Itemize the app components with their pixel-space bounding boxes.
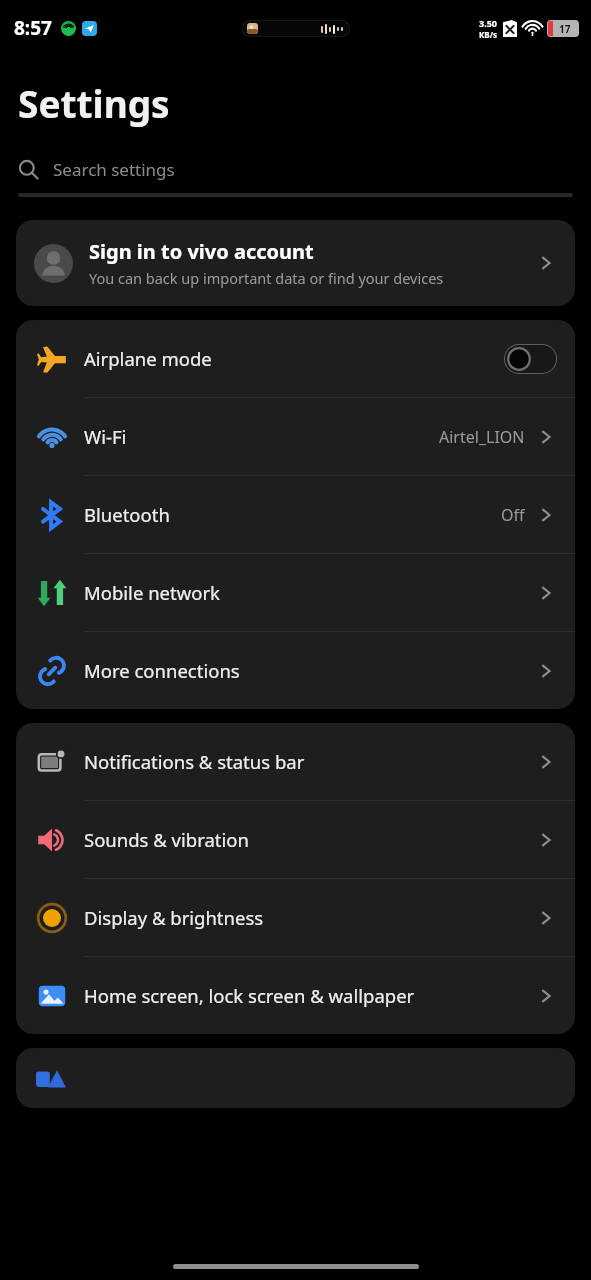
button[interactable]: Wi-Fi — [16, 398, 575, 476]
staticText: Display & brightness — [84, 905, 535, 930]
staticText: Home screen, lock screen & wallpaper — [84, 983, 535, 1008]
button[interactable]: More connections — [16, 632, 575, 709]
staticText: Mobile network — [84, 580, 535, 605]
staticText: 3.50 — [479, 17, 497, 29]
button[interactable]: Display & brightness — [16, 879, 575, 957]
staticText: Airtel_LION — [439, 426, 525, 448]
button[interactable] — [16, 1048, 575, 1108]
staticText: More connections — [84, 658, 535, 683]
staticText: Settings — [18, 78, 170, 128]
staticText: 8:57 — [14, 15, 52, 41]
staticText: Sounds & vibration — [84, 827, 535, 852]
button[interactable]: Notifications & status bar — [16, 723, 575, 801]
staticText: 17 — [559, 22, 571, 36]
button[interactable]: Airplane mode — [16, 320, 575, 398]
staticText: Search settings — [53, 158, 175, 181]
button[interactable]: Bluetooth — [16, 476, 575, 554]
staticText: KB/s — [479, 29, 497, 40]
staticText: You can back up important data or find y… — [89, 268, 444, 288]
button[interactable]: Search settings — [18, 142, 573, 197]
button[interactable]: Home screen, lock screen & wallpaper — [16, 957, 575, 1034]
staticText: Airplane mode — [84, 346, 504, 371]
button[interactable]: Sign in to vivo account — [16, 220, 575, 306]
button[interactable]: Airplane mode toggle — [504, 344, 557, 374]
staticText: Sign in to vivo account — [89, 238, 314, 265]
staticText: Off — [501, 504, 525, 526]
staticText: Bluetooth — [84, 502, 501, 527]
button[interactable]: Mobile network — [16, 554, 575, 632]
staticText: Wi-Fi — [84, 424, 439, 449]
staticText: Notifications & status bar — [84, 749, 535, 774]
button[interactable]: Sounds & vibration — [16, 801, 575, 879]
